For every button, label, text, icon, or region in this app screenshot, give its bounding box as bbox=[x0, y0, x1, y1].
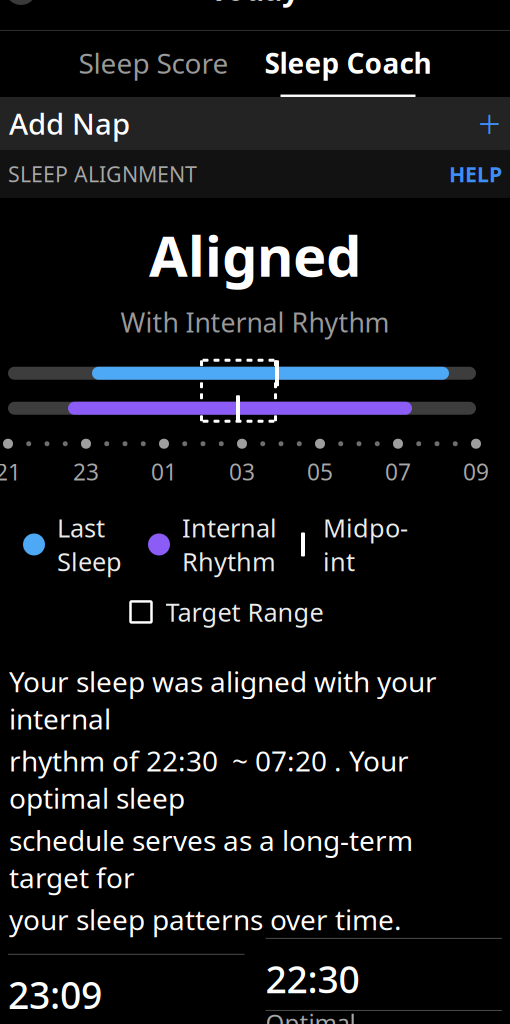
staticText: Your sleep was aligned with your interna… bbox=[9, 663, 437, 737]
button[interactable]: HELP bbox=[433, 150, 502, 198]
staticText: Aligned bbox=[149, 218, 361, 292]
staticText: 01 bbox=[151, 457, 177, 487]
staticText: Today bbox=[210, 0, 300, 9]
staticText: Optimal Bedtime bbox=[265, 1006, 361, 1024]
staticText: 07 bbox=[385, 457, 411, 487]
staticText: Sleep Coach bbox=[264, 44, 431, 82]
staticText: SLEEP ALIGNMENT bbox=[8, 160, 197, 188]
staticText: 22:30 bbox=[265, 954, 359, 1003]
button[interactable]: Add Nap bbox=[0, 97, 510, 150]
staticText: + bbox=[478, 97, 501, 150]
staticText: 09 bbox=[463, 457, 489, 487]
staticText: your sleep patterns over time. bbox=[9, 901, 402, 938]
staticText: With Internal Rhythm bbox=[120, 304, 389, 340]
staticText: 05 bbox=[307, 457, 333, 487]
staticText: 21 bbox=[0, 457, 21, 487]
button[interactable]: Sleep Coach bbox=[258, 30, 437, 98]
staticText: 03 bbox=[229, 457, 255, 487]
staticText: 23 bbox=[73, 457, 99, 487]
staticText: Target Range bbox=[165, 595, 323, 629]
staticText: schedule serves as a long-term target fo… bbox=[9, 821, 413, 896]
staticText: rhythm of 22:30 ~ 07:20 . Your optimal s… bbox=[9, 742, 409, 816]
staticText: Last Sleep bbox=[57, 511, 122, 578]
button[interactable]: Sleep Score bbox=[72, 30, 234, 98]
staticText: Midpoint bbox=[323, 511, 408, 578]
staticText: 23:09 bbox=[8, 970, 102, 1019]
staticText: Add Nap bbox=[9, 104, 130, 143]
staticText: ‹ bbox=[17, 0, 24, 5]
staticText: HELP bbox=[449, 160, 502, 188]
staticText: Internal Rhythm bbox=[182, 511, 277, 578]
staticText: Sleep Score bbox=[78, 44, 228, 82]
button[interactable]: Previous day bbox=[0, 0, 43, 11]
